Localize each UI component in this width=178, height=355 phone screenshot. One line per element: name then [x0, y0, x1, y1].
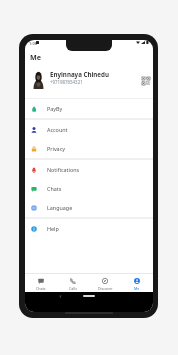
button[interactable]: Back [59, 295, 62, 298]
button[interactable]: Me [121, 274, 153, 292]
staticText: 1:06 [29, 41, 37, 46]
button[interactable]: My QR code [141, 76, 150, 85]
button[interactable]: Discover [89, 274, 121, 292]
staticText: Me [134, 286, 140, 291]
button[interactable]: Privacy [25, 139, 153, 158]
button[interactable]: Calls [57, 274, 89, 292]
button[interactable]: Account [25, 120, 153, 139]
staticText: Chats [47, 185, 62, 192]
button[interactable]: PayBy [25, 99, 153, 118]
staticText: Help [47, 225, 59, 232]
button[interactable]: Notifications [25, 160, 153, 179]
staticText: Chats [36, 286, 46, 291]
staticText: Account [47, 126, 68, 133]
staticText: Privacy [47, 145, 65, 152]
button[interactable]: Chats [25, 179, 153, 198]
button[interactable]: Enyinnaya Chinedu [25, 62, 153, 98]
staticText: +971987654321 [50, 79, 83, 85]
button[interactable]: Language [25, 198, 153, 217]
staticText: Me [30, 52, 42, 62]
staticText: Calls [69, 286, 77, 291]
staticText: Discover [98, 286, 113, 291]
staticText: PayBy [47, 105, 63, 112]
button[interactable]: Chats [25, 274, 57, 292]
staticText: Notifications [47, 166, 80, 173]
staticText: Language [47, 204, 73, 211]
button[interactable]: Home [83, 295, 95, 297]
staticText: Enyinnaya Chinedu [50, 70, 109, 78]
button[interactable]: Help [25, 219, 153, 238]
